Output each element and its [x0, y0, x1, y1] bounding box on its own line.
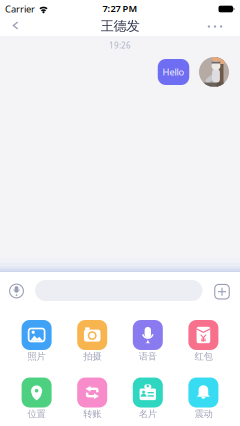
button[interactable]: 语音 — [125, 319, 171, 364]
staticText: Carrier — [5, 3, 35, 15]
staticText: 7:27 PM — [102, 2, 137, 15]
button[interactable]: More actions — [215, 284, 229, 299]
button[interactable]: 名片 — [125, 377, 171, 422]
staticText: 19:26 — [109, 40, 131, 51]
staticText: 王德发 — [100, 18, 139, 34]
button[interactable]: 位置 — [14, 377, 60, 422]
button[interactable]: Profile photo — [199, 57, 229, 87]
button[interactable]: 转账 — [69, 377, 115, 422]
button[interactable]: More — [203, 19, 227, 33]
button[interactable]: 拍摄 — [69, 319, 115, 364]
button[interactable]: Hello — [158, 59, 189, 85]
button[interactable]: 红包 — [180, 319, 226, 364]
staticText: 震动 — [194, 408, 212, 420]
staticText: 名片 — [139, 408, 157, 420]
button[interactable]: Voice input — [10, 284, 23, 298]
staticText: 照片 — [28, 351, 46, 362]
staticText: 拍摄 — [83, 351, 101, 362]
staticText: 红包 — [194, 351, 212, 362]
button[interactable]: 照片 — [14, 319, 60, 364]
button[interactable]: 震动 — [180, 377, 226, 422]
staticText: 语音 — [139, 351, 157, 362]
staticText: 转账 — [83, 408, 101, 420]
button[interactable]: Back — [6, 17, 24, 33]
staticText: Hello — [162, 66, 184, 78]
staticText: 位置 — [28, 408, 46, 420]
